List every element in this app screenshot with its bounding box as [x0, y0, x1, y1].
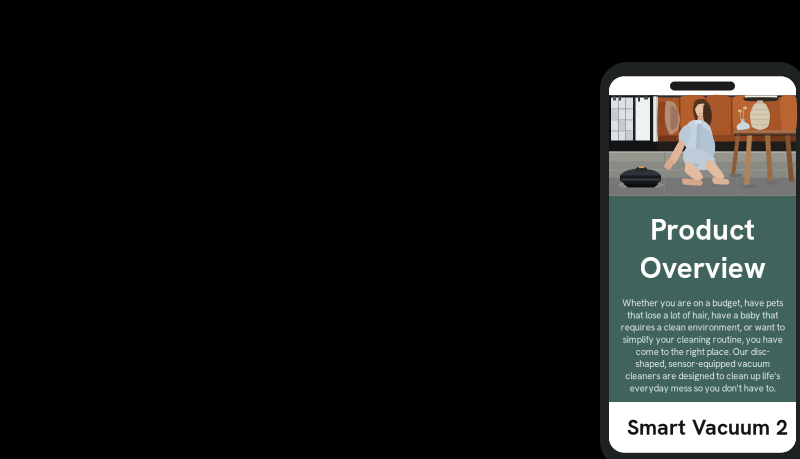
staticText: Product Overview	[639, 210, 765, 287]
button[interactable]: Product Overview	[609, 210, 796, 287]
button[interactable]: Smart Vacuum 2	[609, 402, 796, 452]
staticText: Smart Vacuum 2	[627, 413, 788, 441]
staticText: Whether you are on a budget, have pets t…	[620, 297, 784, 394]
